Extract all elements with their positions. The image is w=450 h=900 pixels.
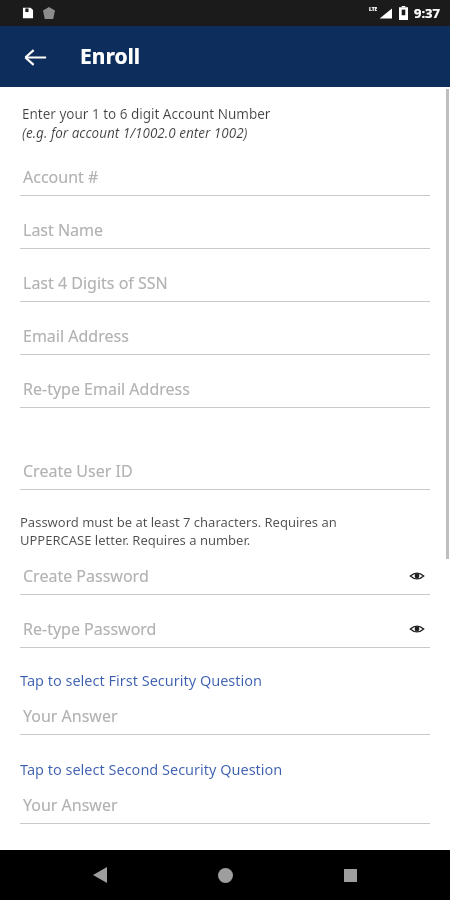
button[interactable]: Your Answer — [0, 698, 450, 751]
button[interactable]: Home — [203, 853, 247, 897]
staticText: Last Name — [23, 219, 104, 241]
staticText: (e.g. for account 1/1002.0 enter 1002) — [22, 124, 248, 142]
staticText: Re-type Email Address — [23, 378, 190, 400]
button[interactable]: Show password — [404, 563, 430, 589]
button[interactable]: Last Name — [0, 212, 450, 265]
staticText: Tap to select Third Security Question — [20, 848, 268, 868]
staticText: Your Answer — [23, 705, 118, 727]
button[interactable]: Account # — [0, 159, 450, 212]
staticText: Your Answer — [23, 794, 118, 816]
button[interactable]: Tap to select First Security Question — [0, 668, 450, 692]
button[interactable]: Show password — [404, 616, 430, 642]
staticText: Create User ID — [23, 460, 133, 482]
button[interactable]: Create Password — [0, 558, 450, 611]
button[interactable]: Email Address — [0, 318, 450, 371]
staticText: Password must be at least 7 characters. … — [20, 513, 337, 531]
button[interactable]: Create User ID — [0, 453, 450, 506]
staticText: Enroll — [80, 42, 141, 71]
staticText: Last 4 Digits of SSN — [23, 272, 168, 294]
button[interactable]: Last 4 Digits of SSN — [0, 265, 450, 318]
button[interactable]: Back — [12, 34, 58, 80]
button[interactable]: Recent apps — [328, 853, 372, 897]
staticText: Re-type Password — [23, 618, 157, 640]
button[interactable]: Re-type Email Address — [0, 371, 450, 424]
button[interactable]: Tap to select Third Security Question — [0, 846, 450, 870]
staticText: Email Address — [23, 325, 129, 347]
staticText: 9:37 — [414, 4, 440, 22]
button[interactable]: Your Answer — [0, 787, 450, 840]
staticText: Create Password — [23, 565, 149, 587]
staticText: Account # — [23, 166, 99, 188]
staticText: Tap to select Second Security Question — [20, 759, 283, 779]
staticText: LTE — [369, 6, 378, 13]
staticText: UPPERCASE letter. Requires a number. — [20, 531, 251, 549]
button[interactable]: Tap to select Second Security Question — [0, 757, 450, 781]
staticText: Tap to select First Security Question — [20, 670, 263, 690]
staticText: Enter your 1 to 6 digit Account Number — [22, 105, 271, 123]
button[interactable]: Re-type Password — [0, 611, 450, 664]
button[interactable]: Back — [78, 853, 122, 897]
